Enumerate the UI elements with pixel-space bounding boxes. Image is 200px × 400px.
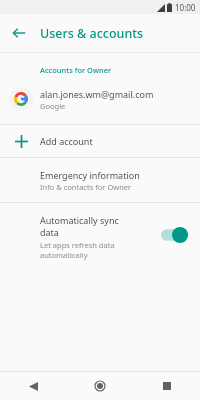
staticText: Automatically sync bbox=[40, 214, 119, 226]
staticText: 10:00 bbox=[175, 2, 196, 13]
button[interactable]: Automatically sync bbox=[0, 203, 200, 273]
button[interactable]: Back bbox=[0, 372, 66, 400]
staticText: data bbox=[40, 226, 59, 238]
staticText: Accounts for Owner bbox=[40, 65, 112, 75]
button[interactable]: Back bbox=[6, 20, 32, 46]
button[interactable]: Recent apps bbox=[133, 372, 200, 400]
button[interactable]: Home bbox=[66, 372, 133, 400]
button[interactable]: Automatically sync data bbox=[160, 225, 190, 245]
staticText: Emergency information bbox=[40, 169, 140, 181]
staticText: Add account bbox=[40, 135, 93, 147]
staticText: Info & contacts for Owner bbox=[40, 182, 132, 192]
staticText: Let apps refresh data bbox=[40, 240, 115, 250]
staticText: Users & accounts bbox=[40, 25, 144, 42]
staticText: Google bbox=[40, 101, 66, 111]
button[interactable]: Emergency information bbox=[0, 158, 200, 202]
staticText: automatically bbox=[40, 250, 88, 260]
staticText: alan.jones.wm@gmail.com bbox=[40, 88, 154, 100]
button[interactable]: Add account bbox=[0, 125, 200, 157]
button[interactable]: alan.jones.wm@gmail.com bbox=[0, 79, 200, 119]
